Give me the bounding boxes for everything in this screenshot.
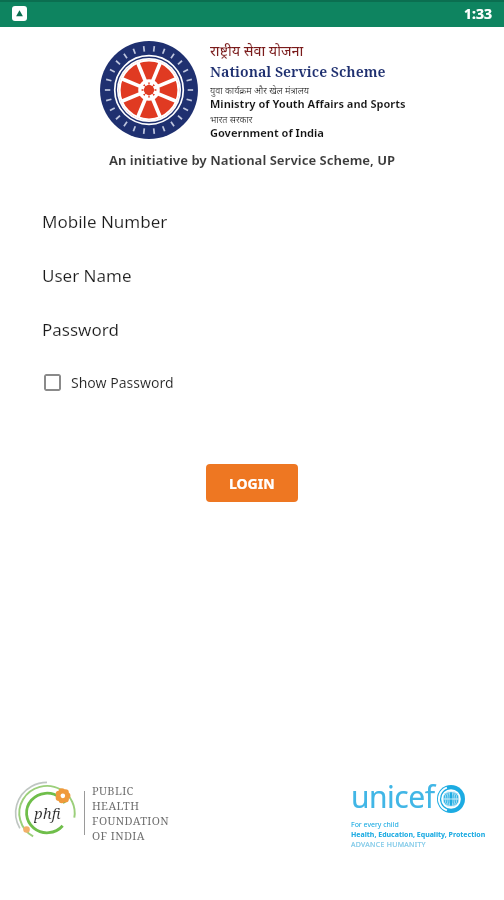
staticText: युवा कार्यक्रम और खेल मंत्रालय <box>210 84 310 96</box>
staticText: OF INDIA <box>92 828 145 843</box>
staticText: राष्ट्रीय सेवा योजना <box>210 41 304 60</box>
staticText: phfi <box>34 803 61 823</box>
staticText: For every child <box>351 820 399 830</box>
staticText: National Service Scheme <box>210 62 386 81</box>
staticText: Government of India <box>210 125 324 140</box>
button[interactable]: Password <box>0 317 504 341</box>
staticText: HEALTH <box>92 798 140 813</box>
staticText: Password <box>42 318 119 341</box>
button[interactable]: LOGIN <box>206 464 298 502</box>
button[interactable]: Show Password <box>42 369 176 396</box>
staticText: Ministry of Youth Affairs and Sports <box>210 96 406 111</box>
staticText: User Name <box>42 264 132 287</box>
button[interactable]: User Name <box>0 263 504 287</box>
staticText: Mobile Number <box>42 210 168 233</box>
staticText: ADVANCE HUMANITY <box>351 840 426 850</box>
staticText: unicef <box>351 776 435 817</box>
button[interactable]: Mobile Number <box>0 209 504 233</box>
staticText: Health, Education, Equality, Protection <box>351 830 486 840</box>
staticText: भारत सरकार <box>210 113 253 125</box>
staticText: FOUNDATION <box>92 813 170 828</box>
staticText: PUBLIC <box>92 783 134 798</box>
staticText: 1:33 <box>464 4 492 23</box>
staticText: An initiative by National Service Scheme… <box>0 151 504 169</box>
staticText: Show Password <box>71 373 174 392</box>
staticText: LOGIN <box>229 474 275 493</box>
